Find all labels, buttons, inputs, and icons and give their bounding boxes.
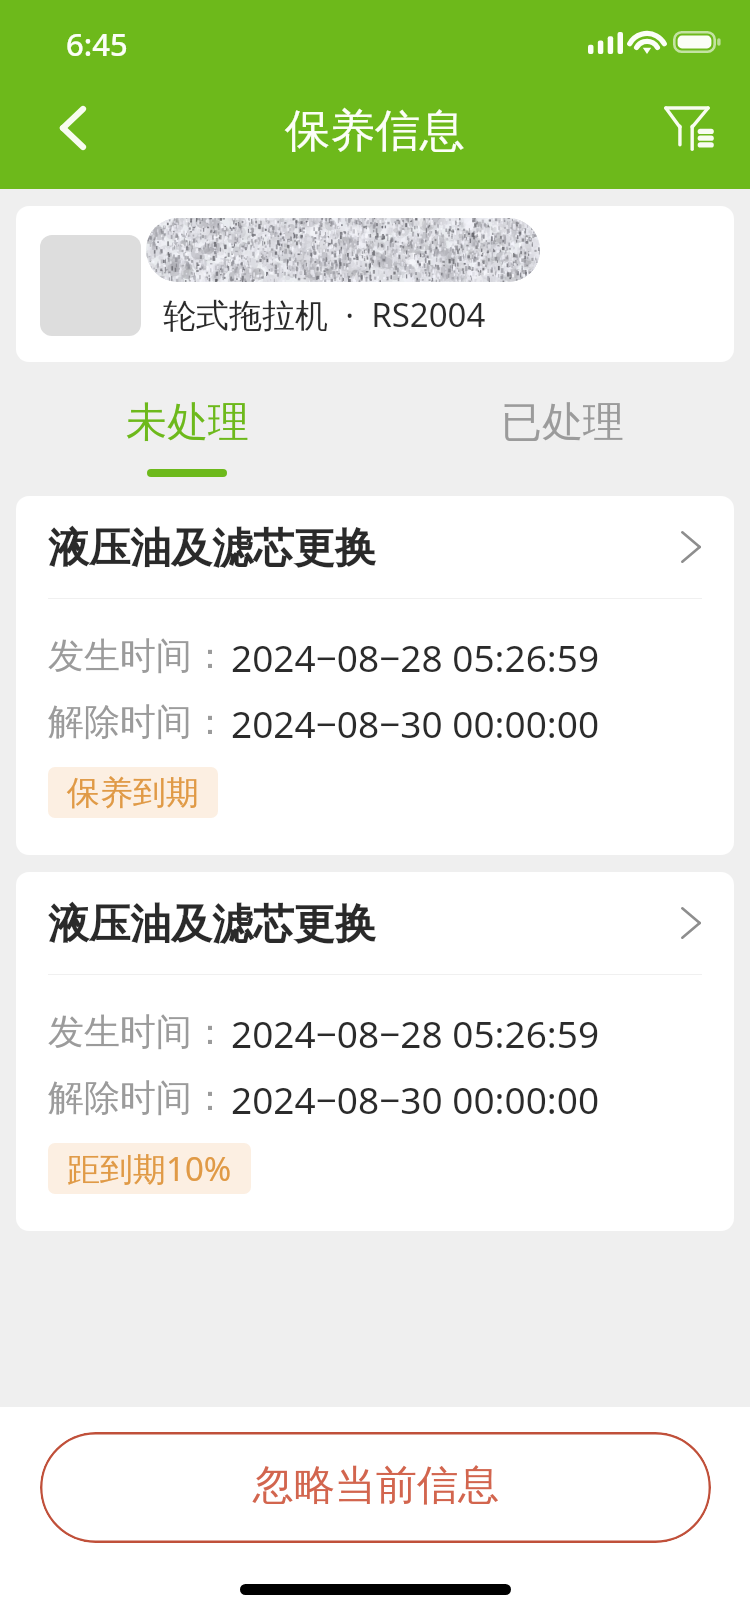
button[interactable]: Filter [636,73,740,183]
staticText: 2024−08−30 00:00:00 [231,1074,600,1120]
button[interactable]: 轮式拖拉机 · RS2004 [16,206,734,362]
staticText: 发生时间： [48,1009,228,1054]
staticText: 解除时间： [48,1075,228,1120]
button[interactable]: 液压油及滤芯更换 [16,872,734,1231]
staticText: 2024−08−30 00:00:00 [231,698,600,744]
staticText: 距到期10% [67,1146,232,1191]
staticText: 液压油及滤芯更换 [48,523,376,575]
staticText: 2024−08−28 05:26:59 [231,1008,600,1054]
button[interactable]: 忽略当前信息 [40,1432,711,1543]
staticText: 保养信息 [285,103,465,160]
staticText: 液压油及滤芯更换 [48,899,376,951]
button[interactable]: Back [28,73,118,183]
staticText: 忽略当前信息 [253,1460,499,1512]
staticText: 保养到期 [67,772,199,814]
staticText: 2024−08−28 05:26:59 [231,632,600,678]
staticText: 6:45 [66,23,128,65]
button[interactable]: 未处理 [0,380,375,466]
staticText: 未处理 [126,397,249,449]
staticText: 已处理 [501,397,624,449]
staticText: 解除时间： [48,699,228,744]
button[interactable]: 已处理 [375,380,750,466]
staticText: 轮式拖拉机 · RS2004 [163,292,486,337]
button[interactable]: 液压油及滤芯更换 [16,496,734,855]
staticText: 发生时间： [48,633,228,678]
